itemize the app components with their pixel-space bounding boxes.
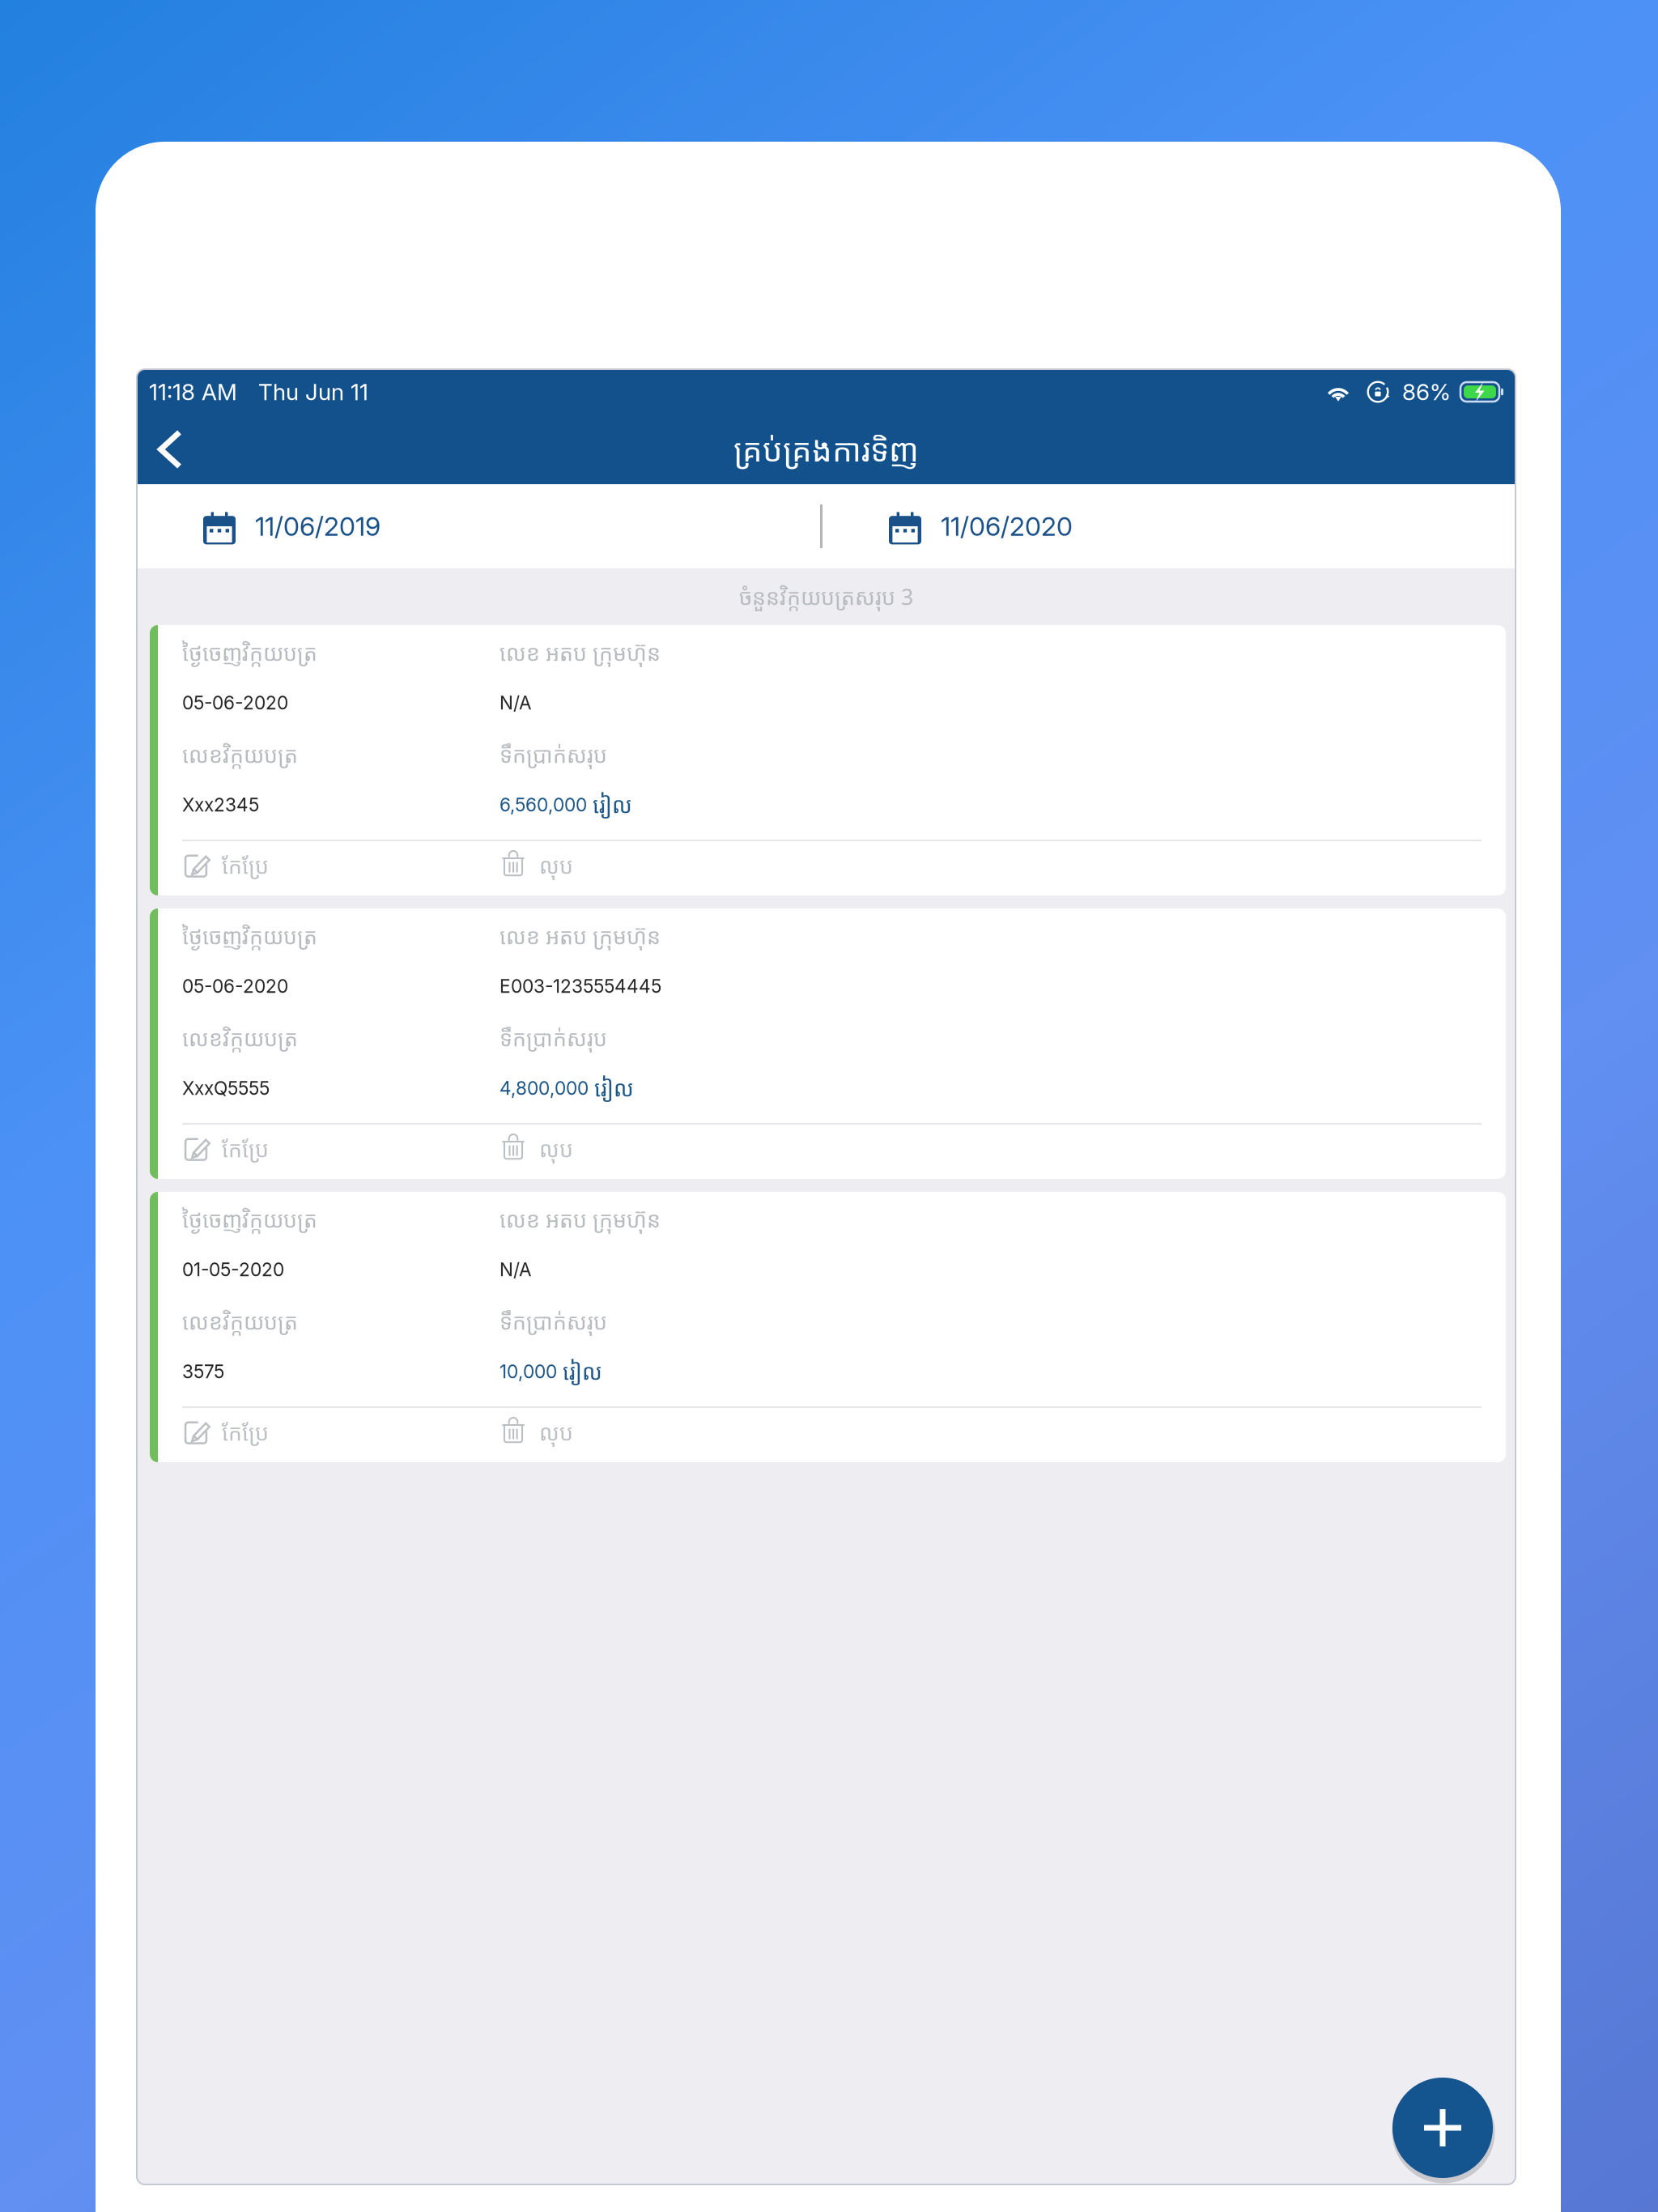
staticText: កែប្រែ: [222, 1134, 269, 1164]
staticText: XxxQ5555: [182, 1077, 270, 1099]
staticText: Xxx2345: [182, 794, 259, 816]
staticText: 01-05-2020: [182, 1258, 284, 1281]
staticText: N/A: [500, 1258, 531, 1281]
staticText: 6,560,000: [500, 794, 587, 816]
staticText: Thu Jun 11: [258, 378, 368, 406]
staticText: កែប្រែ: [222, 1418, 269, 1447]
staticText: ថ្ងៃចេញវិក្កយបត្រ: [182, 638, 317, 667]
staticText: រៀល: [593, 790, 632, 819]
staticText: 11:18 AM: [149, 378, 237, 406]
staticText: លេខ អតប ក្រុមហ៊ុន: [500, 638, 661, 667]
staticText: ទឹកប្រាក់សរុប: [500, 740, 607, 769]
staticText: លុប: [539, 1418, 573, 1447]
staticText: លុប: [539, 851, 573, 880]
button[interactable]: Add: [1392, 2078, 1493, 2178]
staticText: ថ្ងៃចេញវិក្កយបត្រ: [182, 1205, 317, 1234]
button[interactable]: លុប: [500, 846, 573, 885]
staticText: E003-1235554445: [500, 975, 661, 997]
staticText: 05-06-2020: [182, 975, 288, 997]
staticText: រៀល: [563, 1357, 602, 1386]
staticText: ទឹកប្រាក់សរុប: [500, 1023, 607, 1053]
button[interactable]: កែប្រែ: [182, 1413, 500, 1452]
button[interactable]: 11/06/2019: [137, 484, 820, 568]
staticText: លេខ អតប ក្រុមហ៊ុន: [500, 1205, 661, 1234]
staticText: 10,000: [500, 1360, 557, 1383]
staticText: 11/06/2019: [255, 511, 380, 542]
button[interactable]: 11/06/2020: [823, 484, 1516, 568]
staticText: 3575: [182, 1360, 224, 1383]
staticText: លេខវិក្កយបត្រ: [182, 1307, 298, 1336]
staticText: ទឹកប្រាក់សរុប: [500, 1307, 607, 1336]
button[interactable]: លុប: [500, 1129, 573, 1168]
staticText: កែប្រែ: [222, 851, 269, 880]
staticText: N/A: [500, 692, 531, 714]
staticText: លេខ អតប ក្រុមហ៊ុន: [500, 921, 661, 951]
button[interactable]: លុប: [500, 1413, 573, 1452]
staticText: 11/06/2020: [941, 511, 1073, 542]
button[interactable]: កែប្រែ: [182, 1129, 500, 1168]
staticText: លុប: [539, 1134, 573, 1164]
staticText: លេខវិក្កយបត្រ: [182, 740, 298, 769]
staticText: ថ្ងៃចេញវិក្កយបត្រ: [182, 921, 317, 951]
staticText: 86%: [1402, 378, 1451, 406]
staticText: 4,800,000: [500, 1077, 589, 1099]
staticText: លេខវិក្កយបត្រ: [182, 1023, 298, 1053]
staticText: ចំនួនវិក្កយបត្រសរុប 3: [739, 582, 913, 611]
staticText: 05-06-2020: [182, 692, 288, 714]
staticText: គ្រប់គ្រងការទិញ: [733, 428, 919, 471]
button[interactable]: Back: [137, 415, 203, 484]
staticText: រៀល: [594, 1073, 634, 1103]
button[interactable]: កែប្រែ: [182, 846, 500, 885]
